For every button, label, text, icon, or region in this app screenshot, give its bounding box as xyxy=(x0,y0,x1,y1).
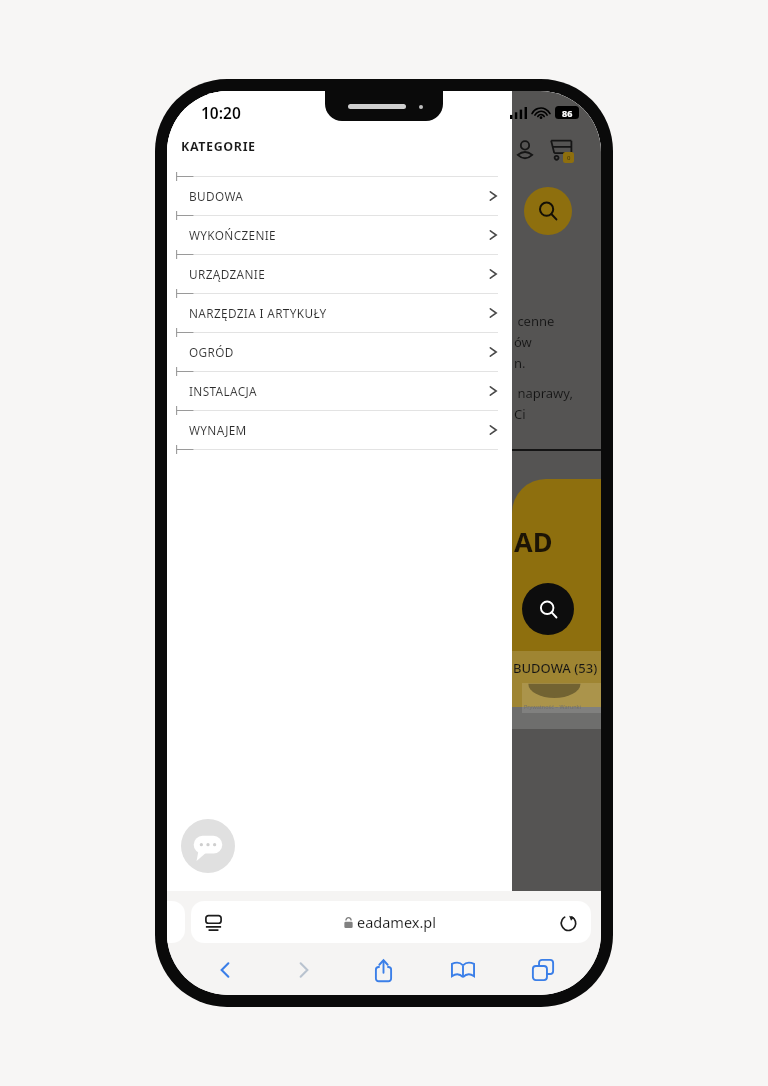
staticText: BUDOWA (53) xyxy=(513,659,598,677)
staticText: ów xyxy=(514,333,532,351)
button[interactable]: Share xyxy=(343,950,423,990)
staticText: cenne xyxy=(514,312,555,330)
staticText: Prywatność – Warunki xyxy=(524,703,581,710)
staticText: KATEGORIE xyxy=(181,138,256,155)
staticText: BUDOWA xyxy=(189,188,244,204)
button[interactable]: OGRÓD xyxy=(167,337,512,367)
button[interactable]: Bookmarks xyxy=(423,950,503,990)
button[interactable]: Cart xyxy=(548,137,574,163)
button[interactable]: WYNAJEM xyxy=(167,415,512,445)
staticText: eadamex.pl xyxy=(357,912,437,932)
button[interactable]: Search xyxy=(524,187,572,235)
button[interactable]: BUDOWA xyxy=(167,181,512,211)
staticText: 10:20 xyxy=(201,102,241,123)
staticText: URZĄDZANIE xyxy=(189,266,266,282)
button[interactable]: URZĄDZANIE xyxy=(167,259,512,289)
staticText: AD xyxy=(514,523,553,560)
button[interactable]: Forward xyxy=(264,950,343,990)
button[interactable]: Back xyxy=(185,950,264,990)
staticText: OGRÓD xyxy=(189,344,234,360)
staticText: Ci xyxy=(514,405,526,423)
button[interactable]: Reload xyxy=(559,913,578,932)
button[interactable]: Chat xyxy=(181,819,235,873)
button[interactable]: INSTALACJA xyxy=(167,376,512,406)
button[interactable]: Search product xyxy=(522,583,574,635)
staticText: 0 xyxy=(567,154,571,162)
button[interactable]: WYKOŃCZENIE xyxy=(167,220,512,250)
staticText: INSTALACJA xyxy=(189,383,257,399)
staticText: WYKOŃCZENIE xyxy=(189,227,277,243)
other: Reader view xyxy=(204,913,223,932)
button[interactable]: Reader view xyxy=(191,901,591,943)
button[interactable]: Account xyxy=(514,139,536,161)
staticText: NARZĘDZIA I ARTYKUŁY xyxy=(189,305,327,321)
staticText: 86 xyxy=(562,107,573,119)
button[interactable]: Tabs xyxy=(503,950,583,990)
staticText: WYNAJEM xyxy=(189,422,247,438)
staticText: naprawy, xyxy=(514,384,573,402)
staticText: n. xyxy=(514,354,526,372)
button[interactable]: NARZĘDZIA I ARTYKUŁY xyxy=(167,298,512,328)
